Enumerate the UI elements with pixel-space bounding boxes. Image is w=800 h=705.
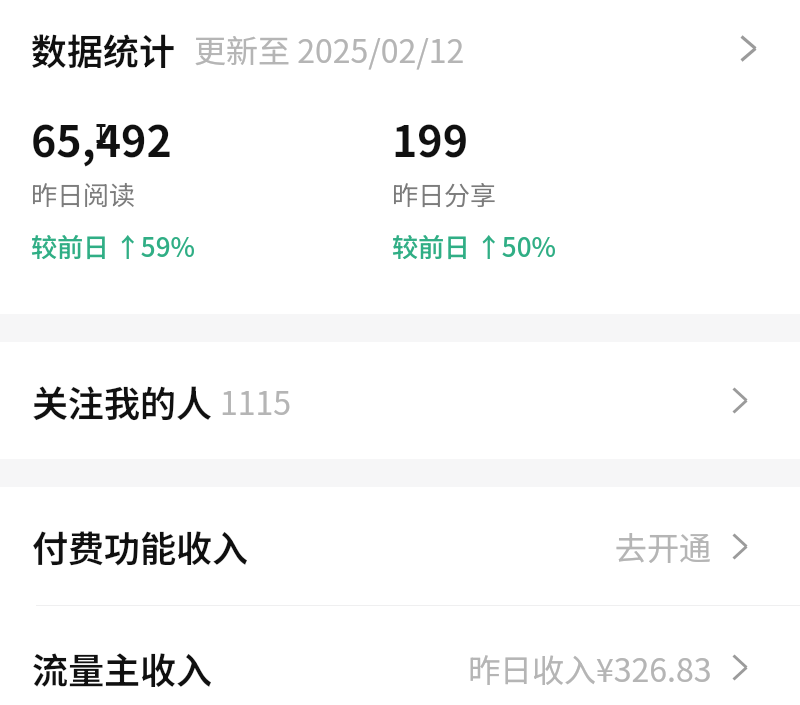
staticText: 去开通 <box>615 523 712 569</box>
button[interactable]: 付费功能收入 <box>0 487 800 605</box>
staticText: 昨日分享 <box>392 175 497 213</box>
button[interactable]: 关注我的人 <box>0 342 800 459</box>
staticText: 较前日 ↑50% <box>392 227 556 265</box>
staticText: 199 <box>392 107 469 169</box>
staticText: 付费功能收入 <box>32 520 249 572</box>
button[interactable]: 流量主收入 <box>0 606 800 705</box>
staticText: 较前日 ↑59% <box>31 227 195 265</box>
staticText: 65,492 <box>31 107 172 169</box>
other: 查看数据统计详情 <box>740 35 757 62</box>
staticText: 1115 <box>220 378 292 424</box>
staticText: 昨日收入¥326.83 <box>468 645 712 691</box>
staticText: 关注我的人 <box>32 375 213 427</box>
staticText: 更新至 2025/02/12 <box>194 26 465 72</box>
button[interactable]: 数据统计 <box>0 0 800 97</box>
staticText: 数据统计 <box>31 23 176 75</box>
staticText: 流量主收入 <box>32 642 213 694</box>
staticText: 昨日阅读 <box>31 175 136 213</box>
